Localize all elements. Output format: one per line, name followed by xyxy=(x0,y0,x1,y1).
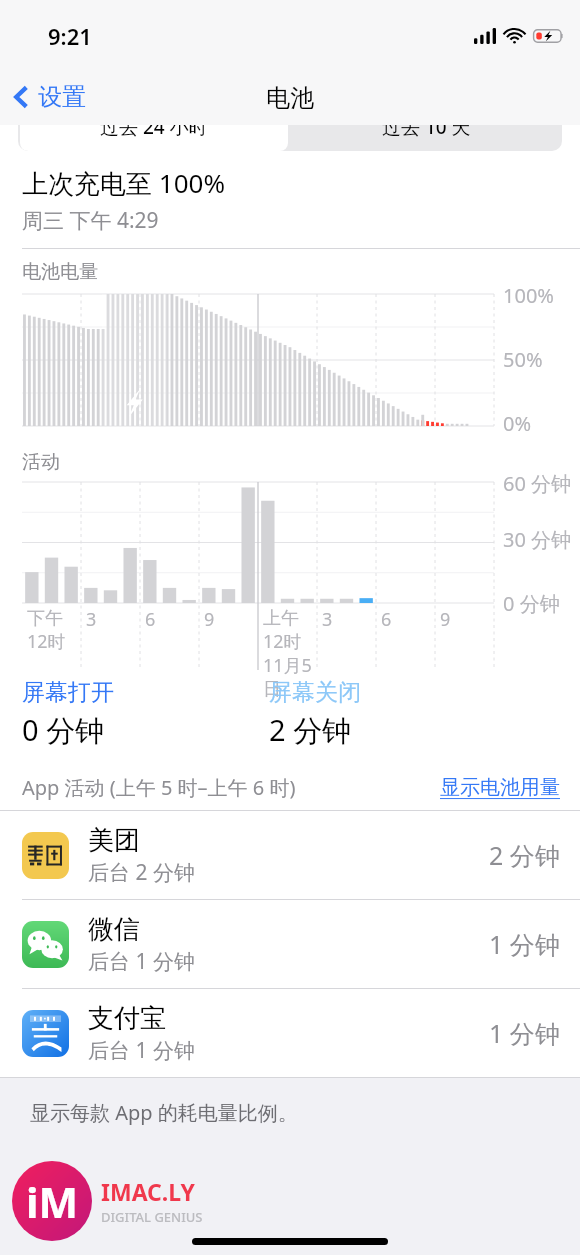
staticText: 0 分钟 xyxy=(503,590,560,617)
staticText: 电池电量 xyxy=(22,260,98,284)
staticText: 美团 xyxy=(88,824,140,857)
staticText: 后台 1 分钟 xyxy=(88,1036,195,1065)
staticText: 2 分钟 xyxy=(269,710,352,750)
staticText: 显示每款 App 的耗电量比例。 xyxy=(30,1099,298,1126)
staticText: 0% xyxy=(503,410,532,437)
button[interactable]: 微信 xyxy=(0,900,580,988)
staticText: 后台 1 分钟 xyxy=(88,947,195,976)
staticText: 过去 10 天 xyxy=(382,125,471,140)
staticText: 屏幕关闭 xyxy=(269,678,361,707)
staticText: 50% xyxy=(503,346,543,373)
button[interactable]: 显示电池用量 xyxy=(440,775,560,800)
staticText: DIGITAL GENIUS xyxy=(101,1208,203,1226)
staticText: 30 分钟 xyxy=(503,526,572,553)
button[interactable]: 过去 24 小时 xyxy=(20,125,288,151)
staticText: 后台 2 分钟 xyxy=(88,858,195,887)
other: Back xyxy=(14,84,29,110)
staticText: 下午 12时 xyxy=(27,607,66,653)
staticText: 1 分钟 xyxy=(489,927,560,961)
staticText: 微信 xyxy=(88,913,140,946)
staticText: 3 xyxy=(86,607,97,632)
staticText: 2 分钟 xyxy=(489,838,560,872)
staticText: 设置 xyxy=(38,82,86,112)
staticText: 0 分钟 xyxy=(22,710,105,750)
staticText: 电池 xyxy=(266,83,314,113)
staticText: App 活动 (上午 5 时–上午 6 时) xyxy=(22,774,296,801)
staticText: iM xyxy=(26,1173,79,1230)
staticText: 1 分钟 xyxy=(489,1016,560,1050)
staticText: 活动 xyxy=(22,450,60,474)
button[interactable]: 美团 xyxy=(0,811,580,899)
button[interactable]: Back xyxy=(0,74,98,120)
button[interactable]: 过去 10 天 xyxy=(290,125,562,151)
staticText: 周三 下午 4:29 xyxy=(22,206,159,235)
staticText: 过去 24 小时 xyxy=(100,125,208,140)
staticText: 6 xyxy=(145,607,156,632)
staticText: 9 xyxy=(440,607,451,632)
staticText: 上午 12时 11月5日 xyxy=(263,607,317,701)
staticText: 9:21 xyxy=(48,21,92,51)
staticText: IMAC.LY xyxy=(101,1176,195,1207)
staticText: 支付宝 xyxy=(88,1002,166,1035)
staticText: 100% xyxy=(503,282,554,309)
staticText: 3 xyxy=(322,607,333,632)
staticText: 6 xyxy=(381,607,392,632)
staticText: 60 分钟 xyxy=(503,470,572,497)
staticText: 9 xyxy=(204,607,215,632)
button[interactable]: 支付宝 xyxy=(0,989,580,1077)
staticText: 上次充电至 100% xyxy=(22,165,225,201)
staticText: 显示电池用量 xyxy=(440,775,560,800)
staticText: 屏幕打开 xyxy=(22,678,114,707)
